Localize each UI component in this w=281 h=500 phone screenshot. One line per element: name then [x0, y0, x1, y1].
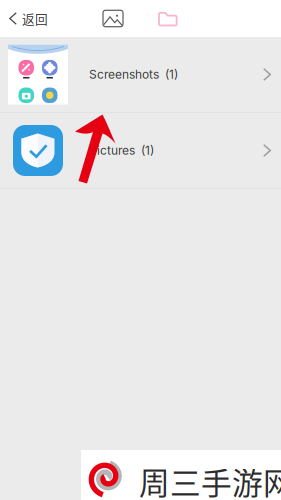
staticText: 返回: [22, 9, 48, 28]
staticText: Screenshots (1): [89, 67, 178, 82]
staticText: 周三手游网: [139, 459, 281, 500]
button[interactable]: Pictures (1): [0, 113, 281, 189]
button[interactable]: 返回: [0, 0, 58, 37]
button[interactable]: Screenshots (1): [0, 37, 281, 113]
button[interactable]: Folders: [150, 0, 186, 37]
button[interactable]: Photos: [95, 0, 131, 37]
staticText: Pictures (1): [89, 143, 154, 158]
